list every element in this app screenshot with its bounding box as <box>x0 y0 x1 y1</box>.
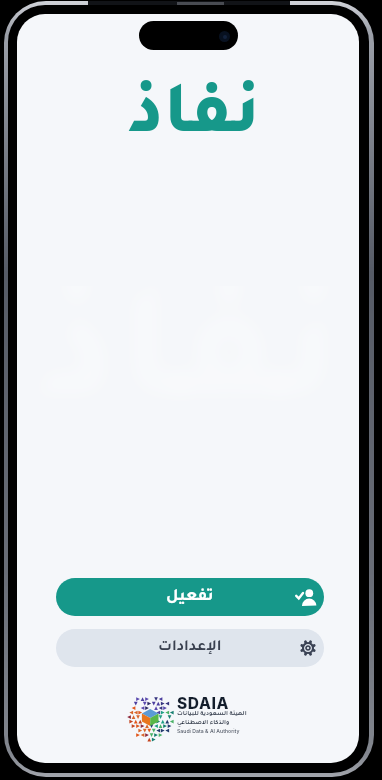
staticText: Saudi Data & AI Authority <box>177 728 240 734</box>
staticText: تفعيل <box>166 589 214 606</box>
button[interactable]: الإعدادات <box>56 629 324 667</box>
staticText: نفاذ <box>128 84 261 158</box>
staticText: الهيئة السعودية للبيانات <box>177 711 247 717</box>
staticText: الإعدادات <box>158 640 222 656</box>
staticText: والذكاء الاصطناعي <box>177 720 230 726</box>
button[interactable]: تفعيل <box>56 578 324 616</box>
staticText: SDAIA <box>177 694 230 713</box>
